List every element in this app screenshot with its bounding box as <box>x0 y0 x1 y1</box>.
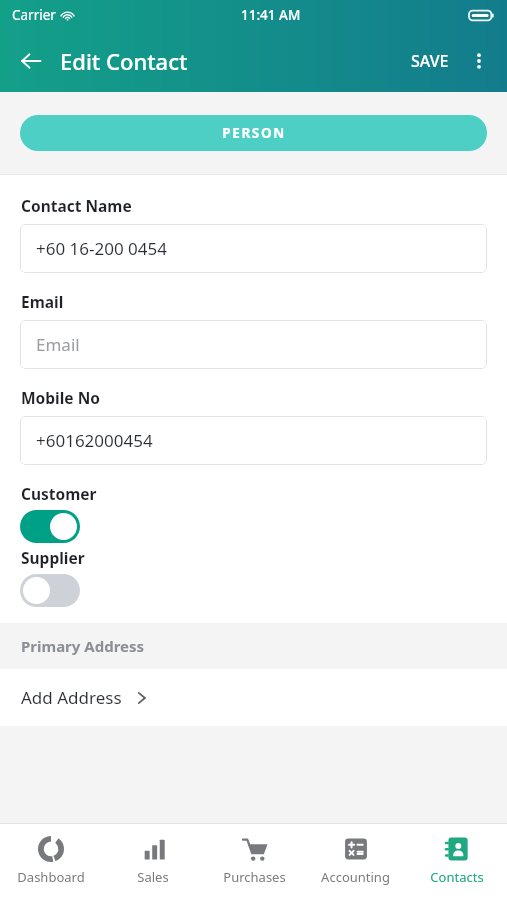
button[interactable]: Email <box>20 320 487 369</box>
staticText: Email <box>36 333 80 356</box>
staticText: Mobile No <box>21 387 100 408</box>
staticText: Supplier <box>21 547 85 568</box>
staticText: Purchases <box>223 868 286 886</box>
staticText: Sales <box>137 868 169 886</box>
staticText: PERSON <box>222 124 286 142</box>
staticText: Dashboard <box>17 868 85 886</box>
button[interactable]: Add Address <box>0 669 507 726</box>
button[interactable]: Dashboard <box>0 824 102 900</box>
staticText: Carrier <box>12 6 56 24</box>
staticText: Contact Name <box>21 195 132 216</box>
button[interactable]: +60162000454 <box>20 416 487 465</box>
button[interactable]: SAVE <box>403 42 457 80</box>
staticText: SAVE <box>411 50 449 72</box>
staticText: Primary Address <box>21 636 145 656</box>
staticText: Customer <box>21 483 97 504</box>
staticText: Add Address <box>21 686 122 709</box>
button[interactable]: Back <box>8 38 54 84</box>
button[interactable]: Supplier <box>20 574 80 607</box>
button[interactable]: Sales <box>102 824 204 900</box>
staticText: Contacts <box>430 868 484 886</box>
staticText: Edit Contact <box>60 46 188 76</box>
button[interactable]: Contacts <box>406 824 507 900</box>
button[interactable]: +60 16-200 0454 <box>20 224 487 273</box>
staticText: Email <box>21 291 64 312</box>
staticText: 11:41 AM <box>241 6 301 24</box>
staticText: +60162000454 <box>36 429 153 452</box>
staticText: +60 16-200 0454 <box>36 237 168 260</box>
button[interactable]: Purchases <box>204 824 305 900</box>
staticText: Accounting <box>321 868 390 886</box>
button[interactable]: Accounting <box>305 824 406 900</box>
button[interactable]: More options <box>457 39 501 83</box>
button[interactable]: Customer <box>20 510 80 543</box>
button[interactable]: PERSON <box>20 115 487 151</box>
